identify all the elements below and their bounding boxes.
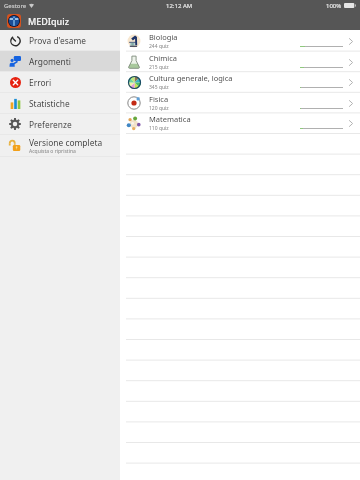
button[interactable]: Matematica (120, 112, 360, 133)
staticText: 120 quiz (149, 105, 169, 112)
staticText: 110 quiz (149, 125, 169, 132)
staticText: Argomenti (29, 56, 71, 67)
button[interactable]: Fisica (120, 92, 360, 113)
staticText: 244 quiz (149, 43, 169, 50)
staticText: Preferenze (29, 119, 72, 130)
staticText: Fisica (149, 94, 169, 104)
staticText: Gestore (4, 2, 27, 10)
other: Open Cultura generale, logica (346, 77, 356, 87)
other: Open Biologia (346, 36, 356, 46)
staticText: 12:12 AM (166, 2, 193, 10)
button[interactable]: Statistiche (0, 93, 120, 113)
staticText: MEDIquiz (28, 15, 69, 27)
staticText: 100% (326, 2, 342, 10)
staticText: Errori (29, 77, 52, 88)
staticText: Statistiche (29, 98, 70, 109)
staticText: Cultura generale, logica (149, 73, 233, 83)
button[interactable]: Cultura generale, logica (120, 71, 360, 92)
button[interactable]: Errori (0, 72, 120, 92)
staticText: Biologia (149, 32, 178, 42)
button[interactable]: Argomenti (0, 51, 120, 71)
other: Open Matematica (346, 118, 356, 128)
staticText: 345 quiz (149, 84, 169, 91)
button[interactable]: Biologia (120, 30, 360, 51)
staticText: Matematica (149, 114, 191, 124)
staticText: Acquista o ripristina (29, 148, 76, 155)
staticText: Versione completa (29, 137, 103, 148)
button[interactable]: Preferenze (0, 114, 120, 134)
staticText: Prova d'esame (29, 35, 87, 46)
button[interactable]: Chimica (120, 51, 360, 72)
staticText: 215 quiz (149, 64, 169, 71)
staticText: Chimica (149, 53, 178, 63)
button[interactable]: Versione completa (0, 135, 120, 156)
other: Open Fisica (346, 98, 356, 108)
button[interactable]: Prova d'esame (0, 30, 120, 50)
other: Open Chimica (346, 57, 356, 67)
